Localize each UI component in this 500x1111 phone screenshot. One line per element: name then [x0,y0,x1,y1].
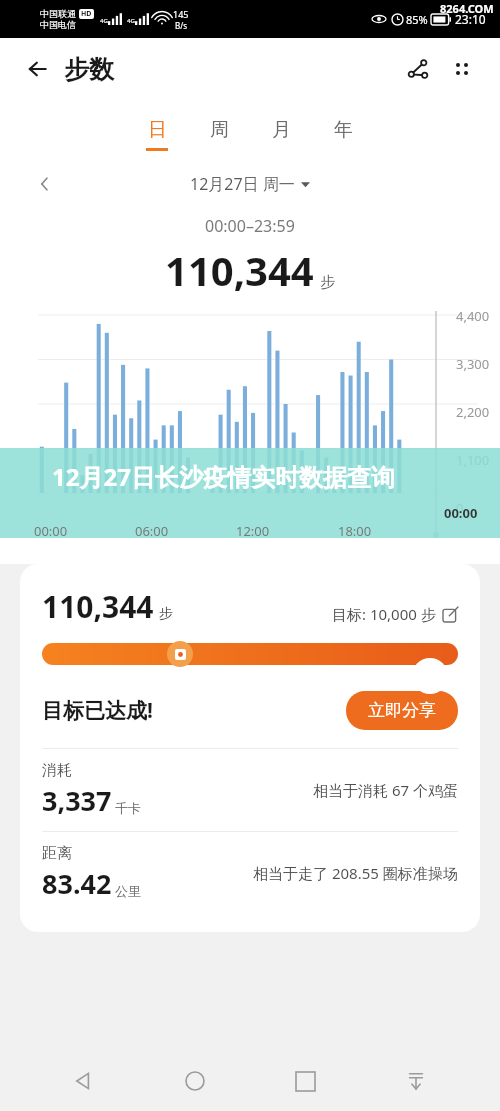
staticText: 12:00 [236,522,270,540]
staticText: 85% [406,12,428,27]
staticText: 中国电信 [40,19,76,30]
staticText: 00:00 [444,504,478,522]
button[interactable]: 立即分享 [346,691,458,730]
staticText: 目标已达成! [42,696,153,725]
staticText: 相当于消耗 67 个鸡蛋 [313,780,458,800]
staticText: 145 [173,8,189,20]
staticText: 4G [100,17,108,25]
staticText: 83.42 [42,865,112,902]
button[interactable]: Recents [279,1055,331,1107]
button[interactable]: Back [58,1055,110,1107]
staticText: 距离 [42,844,72,863]
staticText: 12月27日 周一 [190,173,295,195]
button[interactable]: 12月27日 周一 [190,173,310,195]
staticText: 4,400 [456,307,490,325]
staticText: 3,300 [456,355,490,373]
staticText: 年 [334,118,353,142]
button[interactable]: 目标: 10,000 步 [332,604,458,627]
button[interactable] [42,643,458,665]
staticText: 月 [272,118,291,142]
staticText: 中国联通 [40,8,76,19]
staticText: 4G [127,17,135,25]
button[interactable]: Assistant [412,658,448,694]
button[interactable]: More options [440,47,484,91]
staticText: 立即分享 [368,700,436,721]
button[interactable]: Share [396,47,440,91]
button[interactable]: 年 [312,114,374,155]
staticText: 8264.COM [440,1,494,16]
staticText: B/s [175,20,188,31]
staticText: 18:00 [338,522,372,540]
staticText: 12月27日长沙疫情实时数据查询 [52,460,395,493]
staticText: 2,200 [456,403,490,421]
button[interactable]: 距离 [42,832,458,914]
button[interactable]: Previous day [30,169,60,199]
staticText: HD [81,9,92,19]
button[interactable]: 消耗 [42,749,458,831]
staticText: 0 [456,499,464,517]
button[interactable]: 月 [250,114,312,155]
staticText: 00:00–23:59 [205,215,295,237]
staticText: 相当于走了 208.55 圈标准操场 [253,863,458,883]
staticText: 1,100 [456,451,490,469]
staticText: 日 [148,118,167,142]
staticText: 目标: 10,000 步 [332,604,436,624]
button[interactable]: Home [169,1055,221,1107]
staticText: 千卡 [115,800,141,816]
staticText: 3,337 [42,782,112,819]
staticText: 110,344 [42,586,154,627]
button[interactable]: 周 [188,114,250,155]
staticText: 110,344 [165,243,314,297]
staticText: 周 [210,118,229,142]
staticText: 23:10 [455,11,486,27]
button[interactable]: Back [16,47,60,91]
button[interactable]: 日 [126,114,188,155]
staticText: 00:00 [34,522,68,540]
staticText: 公里 [115,883,141,899]
button[interactable]: Hide navigation bar [390,1055,442,1107]
staticText: 消耗 [42,761,72,780]
staticText: 步数 [64,54,114,85]
staticText: 步 [159,605,173,623]
staticText: 06:00 [135,522,169,540]
staticText: 步 [320,273,335,292]
